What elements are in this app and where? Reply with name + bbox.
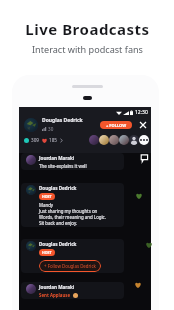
staticText: Jourdan Maraki: [39, 155, 75, 161]
staticText: The site-explains it well: [39, 163, 87, 169]
staticText: Douglas Dedrick: [39, 185, 77, 191]
button[interactable]: + FOLLOW: [100, 121, 132, 129]
staticText: Douglas Dedrick: [42, 117, 83, 124]
staticText: + FOLLOW: [106, 123, 127, 128]
button[interactable]: Douglas Dedrick: [21, 183, 124, 227]
staticText: Mandy: [39, 202, 54, 208]
staticText: + Follow Douglas Dedrick: [44, 263, 96, 269]
staticText: Live Broadcasts: [25, 19, 150, 39]
other: Comment: [140, 154, 148, 162]
staticText: HOST: [42, 194, 52, 199]
staticText: 30: [48, 126, 54, 132]
staticText: Interact with podcast fans: [32, 43, 143, 55]
button[interactable]: Close: [138, 120, 148, 130]
staticText: HOST: [42, 250, 52, 255]
button[interactable]: Jourdan Maraki: [21, 282, 124, 299]
button[interactable]: Jourdan Maraki: [21, 153, 124, 170]
staticText: Just sharing my thoughts on Words, their…: [39, 208, 109, 226]
staticText: 12:30: [135, 109, 148, 116]
staticText: Jourdan Maraki: [39, 284, 75, 290]
staticText: 185: [49, 137, 57, 143]
button[interactable]: + Follow Douglas Dedrick: [39, 260, 101, 272]
button[interactable]: Douglas Dedrick: [21, 239, 124, 273]
staticText: 309: [31, 137, 39, 143]
staticText: Sent Applause: [39, 292, 71, 298]
staticText: Douglas Dedrick: [39, 241, 77, 247]
